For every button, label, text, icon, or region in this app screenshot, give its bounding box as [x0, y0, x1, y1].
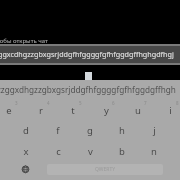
staticText: QWERTY — [95, 166, 116, 173]
staticText: c — [56, 145, 61, 158]
staticText: zzggxdhgzzgbxgsrjddgfhfggggfgfhfggdgffhg… — [0, 84, 177, 95]
button[interactable]: e — [0, 100, 25, 120]
staticText: h — [119, 124, 125, 137]
staticText: ggxcdhgzzgbxgsrjddgfhfggggfgfhfggdgffhgh… — [0, 49, 178, 59]
button[interactable]: n — [138, 141, 170, 161]
button[interactable]: y — [90, 100, 122, 120]
button[interactable]: r — [25, 100, 57, 120]
staticText: 7 — [144, 100, 147, 106]
button[interactable]: d — [10, 120, 42, 140]
staticText: x — [23, 145, 29, 158]
button[interactable]: ggxcdhgzzgbxgsrjddgfhfggggfgfhfggdgffhgh… — [0, 44, 180, 65]
button[interactable]: f — [42, 120, 74, 140]
button[interactable]: b — [106, 141, 138, 161]
button[interactable]: Change keyboard language — [18, 162, 33, 177]
button[interactable]: i — [154, 100, 180, 120]
button[interactable]: v — [74, 141, 106, 161]
staticText: u — [135, 104, 141, 117]
staticText: g — [87, 124, 93, 137]
staticText: f — [56, 124, 60, 137]
staticText: b — [119, 145, 125, 158]
staticText: i — [169, 104, 172, 117]
button[interactable]: j — [138, 120, 170, 140]
staticText: 8 — [176, 100, 179, 106]
staticText: t — [71, 104, 75, 117]
staticText: 3 — [15, 100, 18, 106]
staticText: 4 — [47, 100, 50, 106]
staticText: 6 — [112, 100, 115, 106]
staticText: d — [23, 124, 29, 137]
staticText: 5 — [79, 100, 82, 106]
staticText: тобы открыть чат — [0, 37, 48, 45]
staticText: e — [6, 104, 12, 117]
staticText: v — [88, 145, 93, 158]
button[interactable]: u — [122, 100, 154, 120]
staticText: j — [153, 124, 156, 137]
button[interactable]: c — [42, 141, 74, 161]
button[interactable]: t — [57, 100, 89, 120]
staticText: n — [151, 145, 157, 158]
button[interactable]: g — [74, 120, 106, 140]
button[interactable]: x — [10, 141, 42, 161]
staticText: r — [39, 104, 43, 117]
staticText: y — [104, 104, 109, 117]
button[interactable]: h — [106, 120, 138, 140]
